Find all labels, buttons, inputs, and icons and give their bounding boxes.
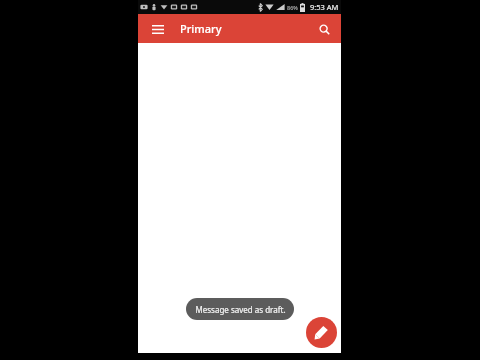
button[interactable]: Search [315, 20, 333, 38]
button[interactable]: Compose [306, 317, 337, 348]
button[interactable]: Message saved as draft. [186, 298, 294, 320]
staticText: Primary [180, 21, 222, 36]
staticText: 9:53 AM [310, 2, 339, 12]
staticText: 86% [287, 4, 298, 11]
staticText: Message saved as draft. [195, 304, 286, 315]
button[interactable]: Open navigation drawer [149, 20, 167, 38]
